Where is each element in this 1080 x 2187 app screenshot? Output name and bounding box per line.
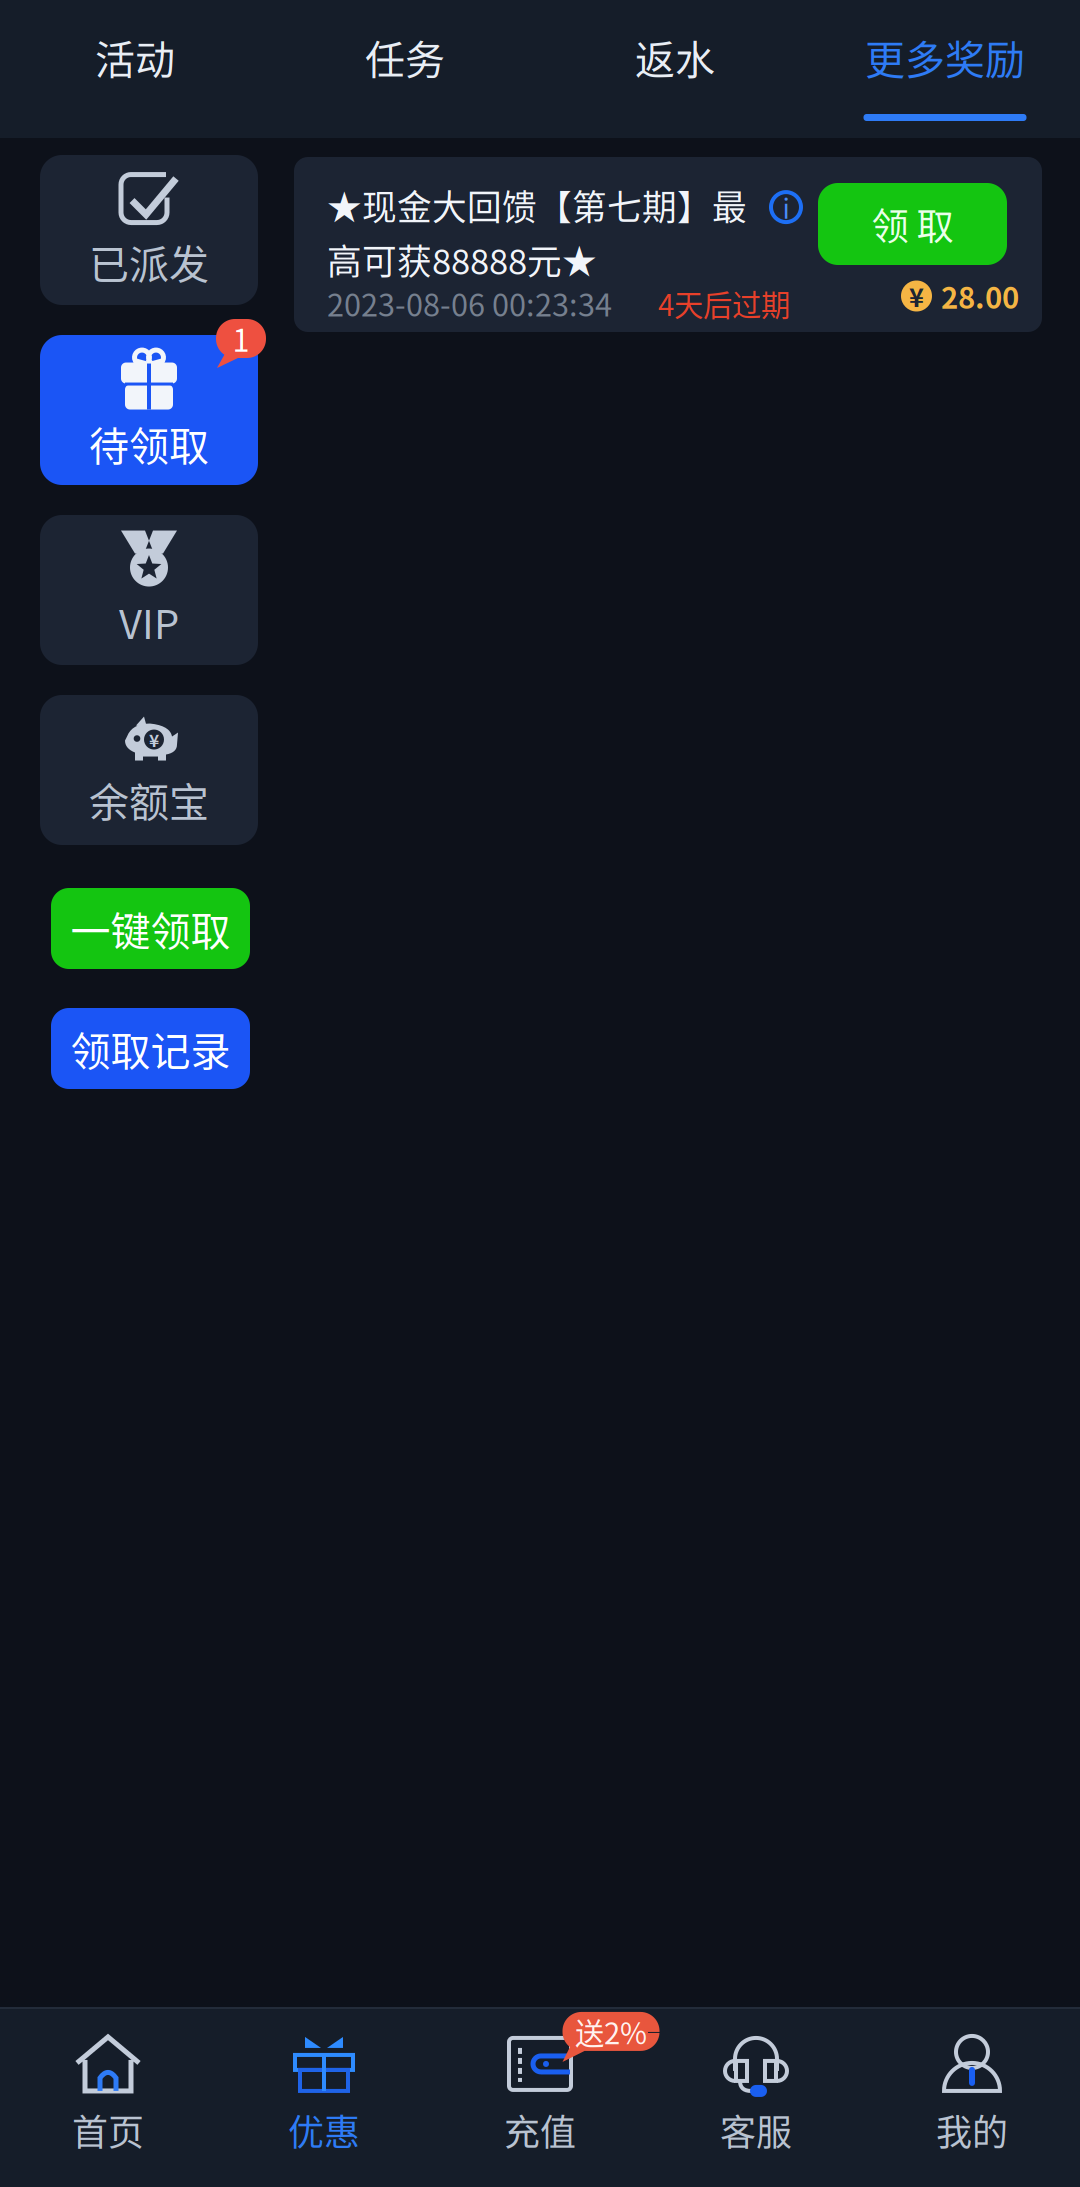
staticText: 我的 xyxy=(936,2104,1008,2156)
button[interactable]: 更多奖励 xyxy=(810,0,1080,138)
staticText: ¥ xyxy=(149,727,159,752)
button[interactable]: 领 取 xyxy=(818,183,1007,265)
staticText: 首页 xyxy=(72,2104,144,2156)
staticText: 28.00 xyxy=(941,275,1019,317)
staticText: i xyxy=(782,188,789,226)
button[interactable]: 送2% xyxy=(432,2036,648,2154)
staticText: 客服 xyxy=(720,2104,792,2156)
button[interactable]: 返水 xyxy=(540,0,810,138)
staticText: 领取记录 xyxy=(70,1019,230,1077)
button[interactable]: 领取记录 xyxy=(51,1008,250,1089)
staticText: 2023-08-06 00:23:34 xyxy=(327,281,612,325)
staticText: 充值 xyxy=(504,2104,576,2156)
staticText: 更多奖励 xyxy=(865,28,1025,86)
button[interactable]: 客服 xyxy=(648,2036,864,2154)
staticText: ¥ xyxy=(909,278,924,314)
button[interactable]: 待领取 xyxy=(40,335,258,485)
button[interactable]: VIP xyxy=(40,515,258,665)
button[interactable]: 优惠 xyxy=(216,2036,432,2154)
staticText: 任务 xyxy=(365,28,445,86)
staticText: 返水 xyxy=(635,28,715,86)
button[interactable]: 首页 xyxy=(0,2036,216,2154)
staticText: 4天后过期 xyxy=(658,282,790,324)
staticText: 送2% xyxy=(575,2010,647,2053)
button[interactable]: 我的 xyxy=(864,2036,1080,2154)
staticText: 余额宝 xyxy=(89,770,209,828)
staticText: 一键领取 xyxy=(70,899,230,957)
staticText: ★现金大回馈【第七期】最 xyxy=(327,180,747,230)
staticText: 领 取 xyxy=(871,197,953,251)
staticText: 活动 xyxy=(95,28,175,86)
staticText: 1 xyxy=(232,316,249,361)
button[interactable]: 活动 xyxy=(0,0,270,138)
button[interactable]: 已派发 xyxy=(40,155,258,305)
button[interactable]: 一键领取 xyxy=(51,888,250,969)
staticText: 优惠 xyxy=(288,2104,360,2156)
staticText: 待领取 xyxy=(89,414,209,472)
button[interactable]: 任务 xyxy=(270,0,540,138)
staticText: 高可获88888元★ xyxy=(327,234,597,284)
button[interactable]: ¥ xyxy=(40,695,258,845)
staticText: VIP xyxy=(119,592,179,650)
staticText: 已派发 xyxy=(89,232,209,290)
